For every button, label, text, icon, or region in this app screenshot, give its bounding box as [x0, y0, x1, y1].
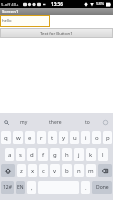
button[interactable]: b	[62, 164, 72, 177]
staticText: hello	[2, 18, 12, 24]
button[interactable]: hello	[0, 15, 50, 27]
button[interactable]: to	[76, 113, 98, 131]
button[interactable]: Done	[92, 181, 112, 194]
staticText: n	[77, 167, 81, 175]
staticText: 58%	[96, 1, 105, 7]
staticText: h	[65, 151, 69, 159]
button[interactable]: w	[13, 131, 23, 144]
button[interactable]: d	[27, 148, 36, 161]
button[interactable]: More options	[98, 113, 113, 131]
staticText: t	[51, 134, 54, 142]
staticText: a	[8, 151, 12, 159]
button[interactable]: .	[81, 181, 90, 194]
button[interactable]: h	[62, 148, 72, 161]
button[interactable]: ,	[27, 181, 36, 194]
staticText: c	[42, 167, 45, 175]
button[interactable]: n	[74, 164, 84, 177]
button[interactable]: r	[37, 131, 46, 144]
staticText: EN	[17, 184, 24, 191]
button[interactable]: u	[70, 131, 79, 144]
staticText: there	[49, 119, 62, 126]
button[interactable]: 12#	[1, 181, 14, 194]
button[interactable]: y	[59, 131, 68, 144]
staticText: Screen1	[2, 9, 19, 15]
staticText: y	[62, 134, 66, 142]
staticText: to	[85, 119, 90, 126]
button[interactable]: g	[50, 148, 60, 161]
button[interactable]: p	[103, 131, 112, 144]
staticText: v	[53, 167, 57, 175]
button[interactable]: m	[86, 164, 96, 177]
staticText: 12#	[3, 184, 12, 191]
staticText: m	[88, 167, 94, 175]
staticText: 5-off 40+	[1, 2, 19, 8]
staticText: d	[30, 151, 34, 159]
button[interactable]: o	[92, 131, 101, 144]
staticText: l	[102, 151, 104, 159]
button[interactable]: x	[28, 164, 37, 177]
staticText: Done	[96, 184, 109, 191]
button[interactable]: t	[48, 131, 57, 144]
button[interactable]: Backspace	[98, 164, 112, 177]
staticText: f	[42, 151, 45, 159]
button[interactable]: Search	[0, 113, 13, 131]
button[interactable]: c	[39, 164, 48, 177]
staticText: p	[106, 134, 110, 142]
button[interactable]: k	[86, 148, 96, 161]
button[interactable]: i	[81, 131, 90, 144]
button[interactable]: Shift	[1, 164, 15, 177]
button[interactable]: e	[25, 131, 35, 144]
staticText: k	[89, 151, 93, 159]
staticText: o	[95, 134, 99, 142]
button[interactable]: s	[16, 148, 25, 161]
button[interactable]: my	[13, 113, 35, 131]
staticText: u	[73, 134, 77, 142]
button[interactable]: a	[5, 148, 14, 161]
button[interactable]: v	[50, 164, 60, 177]
staticText: my	[20, 119, 28, 126]
staticText: e	[28, 134, 32, 142]
staticText: r	[40, 134, 43, 142]
staticText: i	[85, 134, 87, 142]
staticText: z	[20, 167, 23, 175]
staticText: g	[53, 151, 57, 159]
button[interactable]: j	[74, 148, 84, 161]
staticText: w	[16, 134, 21, 142]
staticText: Text for Button1	[40, 30, 73, 36]
staticText: s	[19, 151, 22, 159]
staticText: j	[78, 151, 80, 159]
staticText: q	[4, 134, 8, 142]
button[interactable]: f	[38, 148, 48, 161]
button[interactable]: Text for Button1	[0, 28, 113, 38]
button[interactable]: there	[35, 113, 76, 131]
staticText: b	[65, 167, 69, 175]
button[interactable]: l	[98, 148, 108, 161]
staticText: x	[31, 167, 35, 175]
button[interactable]: EN	[16, 181, 25, 194]
staticText: ,	[31, 184, 33, 192]
staticText: .	[85, 184, 87, 192]
button[interactable]: q	[1, 131, 11, 144]
staticText: 13:36	[51, 1, 63, 7]
button[interactable]: z	[17, 164, 26, 177]
